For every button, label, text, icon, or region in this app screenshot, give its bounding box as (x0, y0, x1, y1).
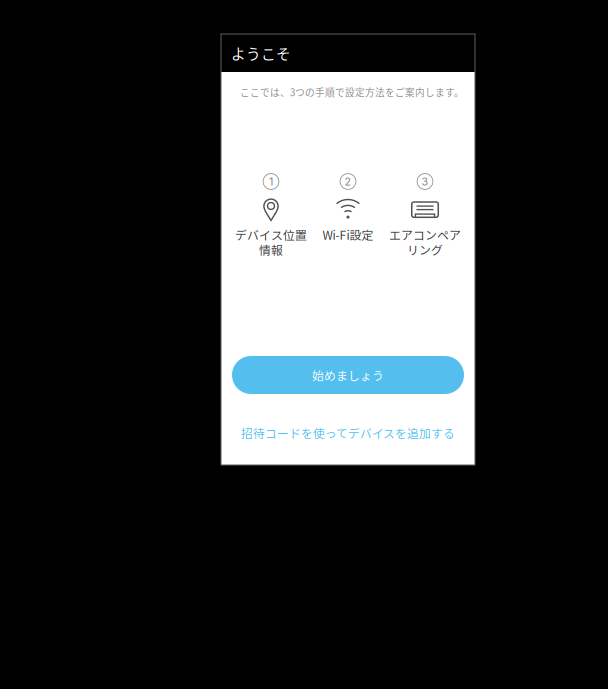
staticText: Wi-Fi設定 (322, 226, 373, 243)
staticText: 1 (269, 175, 273, 188)
staticText: デバイス位置 (235, 226, 307, 243)
staticText: エアコンペア (389, 226, 461, 243)
staticText: ようこそ (231, 42, 291, 64)
staticText: 2 (344, 175, 351, 188)
staticText: ここでは、3つの手順で設定方法をご案内します。 (240, 85, 464, 99)
staticText: 始めましょう (312, 366, 384, 384)
button[interactable]: 招待コードを使ってデバイスを追加する (221, 424, 475, 442)
button[interactable]: 始めましょう (232, 356, 464, 394)
staticText: 招待コードを使ってデバイスを追加する (241, 425, 455, 441)
staticText: 情報 (259, 241, 283, 258)
staticText: リング (407, 241, 443, 258)
staticText: 3 (421, 175, 428, 188)
